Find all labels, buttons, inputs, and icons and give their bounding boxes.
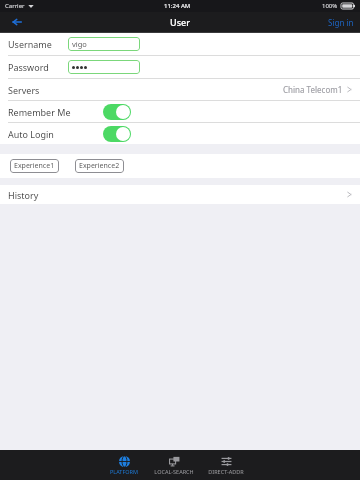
staticText: Password (8, 61, 49, 73)
staticText: Username (8, 38, 52, 50)
button[interactable]: Servers (0, 79, 360, 100)
button[interactable]: vigo (68, 37, 140, 51)
button[interactable]: Sign in (328, 17, 354, 28)
staticText: Auto Login (8, 128, 54, 140)
staticText: DIRECT-ADDR (208, 468, 244, 475)
staticText: PLATFORM (110, 468, 138, 475)
button[interactable]: LOCAL-SEARCH (152, 456, 196, 475)
staticText: 100% (322, 2, 338, 10)
staticText: Remember Me (8, 106, 71, 118)
button[interactable]: PLATFORM (108, 456, 140, 475)
button[interactable]: Toggle (103, 126, 131, 142)
staticText: 11:24 AM (164, 2, 191, 10)
staticText: China Telecom1 (283, 84, 343, 95)
staticText: User (170, 16, 190, 28)
staticText: Experience2 (79, 161, 120, 171)
button[interactable]: Toggle (103, 104, 131, 120)
staticText: LOCAL-SEARCH (154, 468, 194, 475)
staticText: Carrier (5, 2, 25, 10)
staticText: History (8, 189, 39, 201)
button[interactable] (68, 60, 140, 74)
button[interactable]: Back (0, 12, 34, 32)
staticText: Experience1 (14, 161, 55, 171)
button[interactable]: Experience2 (75, 159, 124, 173)
button[interactable]: DIRECT-ADDR (206, 456, 246, 475)
button[interactable]: History (0, 185, 360, 204)
staticText: vigo (72, 39, 87, 49)
button[interactable]: Experience1 (10, 159, 59, 173)
staticText: Servers (8, 84, 40, 96)
staticText: Sign in (328, 17, 354, 28)
